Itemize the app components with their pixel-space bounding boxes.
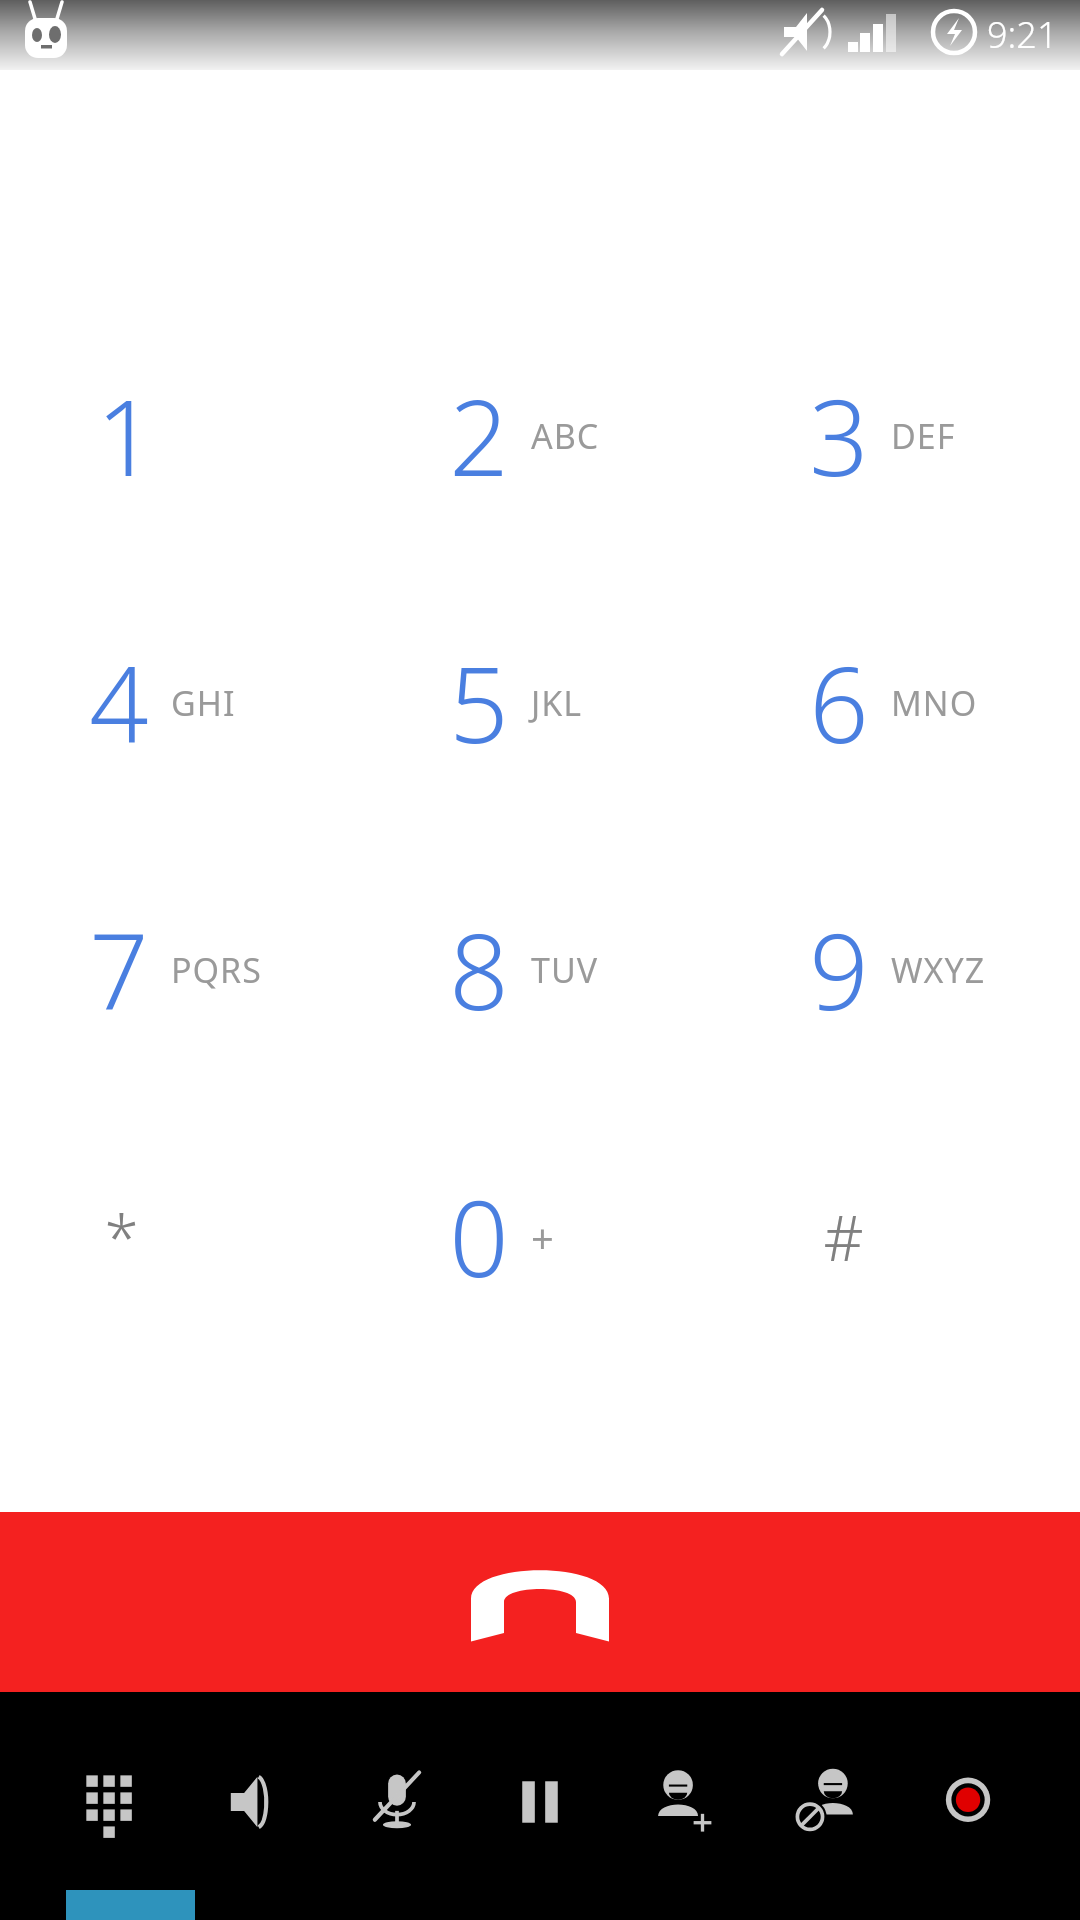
staticText: 3 — [809, 365, 869, 507]
button[interactable]: End call — [0, 1512, 1080, 1692]
button[interactable]: 2 — [360, 302, 720, 569]
staticText: 5 — [449, 632, 509, 774]
button[interactable]: Hold — [488, 1750, 592, 1854]
button[interactable]: 7 — [0, 836, 360, 1103]
staticText: # — [823, 1195, 864, 1279]
staticText: JKL — [531, 680, 583, 726]
staticText: 6 — [809, 632, 869, 774]
button[interactable]: Swap call — [775, 1750, 879, 1854]
button[interactable]: Add call — [632, 1750, 736, 1854]
staticText: 0 — [449, 1166, 509, 1308]
staticText: * — [104, 1195, 139, 1279]
button[interactable]: 4 — [0, 569, 360, 836]
staticText: + — [531, 1210, 555, 1264]
button[interactable]: 8 — [360, 836, 720, 1103]
staticText: DEF — [891, 413, 956, 459]
button[interactable]: 9 — [720, 836, 1080, 1103]
staticText: PQRS — [171, 947, 262, 993]
button[interactable]: Dialpad — [58, 1750, 162, 1854]
staticText: WXYZ — [891, 947, 986, 993]
button[interactable]: 5 — [360, 569, 720, 836]
staticText: GHI — [171, 680, 236, 726]
button[interactable]: Speaker — [201, 1750, 305, 1854]
staticText: TUV — [531, 947, 599, 993]
button[interactable]: Record — [919, 1750, 1023, 1854]
button[interactable]: # — [720, 1103, 1080, 1370]
staticText: 7 — [89, 899, 149, 1041]
button[interactable]: 1 — [0, 302, 360, 569]
staticText: ABC — [531, 413, 600, 459]
staticText: 4 — [89, 632, 149, 774]
button[interactable]: 6 — [720, 569, 1080, 836]
staticText: 1 — [96, 365, 156, 507]
staticText: MNO — [891, 680, 978, 726]
button[interactable]: Mute — [345, 1750, 449, 1854]
button[interactable]: * — [0, 1103, 360, 1370]
staticText: 9:21 — [987, 10, 1058, 59]
button[interactable]: 3 — [720, 302, 1080, 569]
staticText: 2 — [449, 365, 509, 507]
button[interactable]: 0 — [360, 1103, 720, 1370]
staticText: 8 — [449, 899, 509, 1041]
staticText: 9 — [809, 899, 869, 1041]
